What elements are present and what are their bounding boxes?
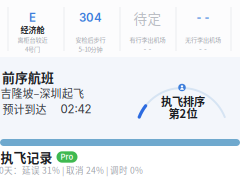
- staticText: 02:42: [60, 102, 91, 116]
- staticText: E: [29, 11, 36, 25]
- staticText: 待定: [133, 8, 161, 28]
- staticText: - -: [143, 45, 151, 53]
- staticText: 离柜台较近: [17, 35, 47, 44]
- button[interactable]: [119, 0, 175, 57]
- staticText: 有行李出机场: [129, 35, 165, 44]
- button[interactable]: [175, 0, 231, 57]
- staticText: 经济舱: [20, 24, 44, 35]
- staticText: 304: [79, 11, 102, 25]
- staticText: 吉隆坡–深圳: [0, 85, 61, 101]
- staticText: - -: [196, 11, 209, 24]
- staticText: 起飞: [62, 85, 84, 101]
- button[interactable]: [62, 0, 118, 57]
- staticText: 预计到达: [2, 101, 46, 117]
- staticText: 5–10分钟: [78, 45, 102, 53]
- button[interactable]: [4, 0, 60, 57]
- button[interactable]: 执飞记录: [0, 148, 77, 166]
- staticText: 前序航班: [2, 68, 54, 86]
- staticText: 执飞记录: [0, 148, 52, 166]
- staticText: 安检后步行: [75, 35, 105, 44]
- staticText: Pro: [60, 152, 73, 162]
- staticText: 第2位: [168, 105, 197, 121]
- staticText: 无行李出机场: [185, 35, 221, 44]
- staticText: 执飞排序: [161, 93, 205, 109]
- staticText: - -: [199, 45, 207, 53]
- staticText: 4号门: [25, 45, 40, 53]
- staticText: 近30天：延误 31% | 取消 24% | 调时 0%: [0, 164, 143, 176]
